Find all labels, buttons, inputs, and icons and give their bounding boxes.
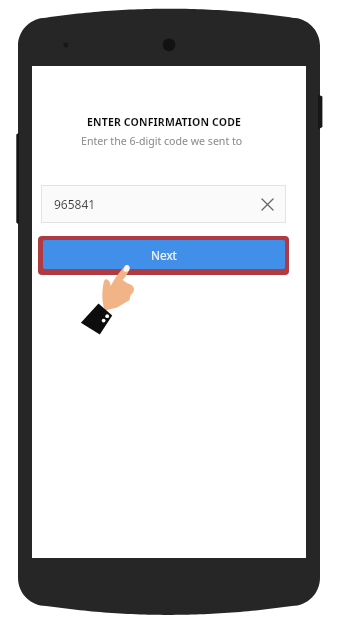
staticText: 965841 — [54, 196, 96, 212]
button[interactable]: 965841 — [41, 185, 286, 223]
button[interactable]: Next — [38, 236, 289, 275]
staticText: Next — [151, 247, 177, 263]
button[interactable]: Clear — [248, 185, 286, 223]
staticText: ENTER CONFIRMATION CODE — [87, 115, 242, 129]
staticText: Enter the 6-digit code we sent to — [81, 134, 243, 148]
